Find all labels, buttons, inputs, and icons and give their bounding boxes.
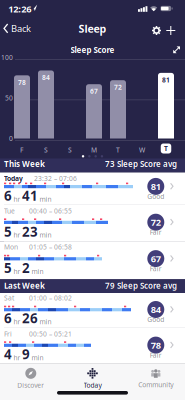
staticText: T xyxy=(116,146,120,154)
button[interactable]: Add xyxy=(166,26,175,35)
staticText: 72 xyxy=(151,216,161,228)
staticText: 84 xyxy=(151,303,161,316)
staticText: 01:00 – 08:02 xyxy=(29,294,72,302)
staticText: T xyxy=(164,144,168,153)
staticText: Sleep Score xyxy=(70,45,114,55)
staticText: hr xyxy=(13,195,20,204)
button[interactable]: Community xyxy=(125,366,185,392)
staticText: 12:26 xyxy=(8,3,31,15)
staticText: F xyxy=(20,146,24,154)
staticText: min xyxy=(31,267,43,276)
staticText: 72 xyxy=(114,83,122,92)
staticText: 00:50 – 05:21 xyxy=(29,329,72,338)
button[interactable]: Sat xyxy=(0,293,185,328)
staticText: Discover xyxy=(17,381,44,390)
button[interactable]: Fri xyxy=(0,328,185,363)
staticText: min xyxy=(39,231,51,239)
button[interactable]: Back xyxy=(3,21,31,35)
button[interactable]: Today xyxy=(62,366,123,392)
staticText: hr xyxy=(13,231,20,239)
staticText: Community xyxy=(138,380,173,389)
staticText: 100 xyxy=(1,53,13,62)
staticText: Fair xyxy=(150,351,162,360)
staticText: Good xyxy=(147,315,164,324)
staticText: Today xyxy=(4,174,23,183)
staticText: 67 xyxy=(151,252,161,265)
staticText: Fair xyxy=(150,264,162,273)
staticText: 79 Sleep Score avg xyxy=(105,280,177,291)
staticText: 4 xyxy=(4,345,12,363)
staticText: Today xyxy=(83,381,101,390)
staticText: 26 xyxy=(22,309,38,327)
staticText: 5 xyxy=(4,223,12,240)
staticText: Mon xyxy=(4,242,18,251)
staticText: 6 xyxy=(4,187,12,204)
button[interactable]: Settings xyxy=(150,24,162,36)
button[interactable]: Expand chart xyxy=(172,46,181,54)
staticText: hr xyxy=(13,267,20,276)
staticText: Fair xyxy=(150,228,162,237)
staticText: Last Week xyxy=(4,280,45,291)
staticText: hr xyxy=(13,317,20,326)
staticText: Good xyxy=(147,192,164,201)
staticText: This Week xyxy=(4,159,45,169)
staticText: W xyxy=(139,146,145,154)
staticText: 50 xyxy=(5,94,13,102)
staticText: Sat xyxy=(4,294,14,302)
staticText: 2 xyxy=(22,259,30,277)
staticText: hr xyxy=(13,353,20,362)
staticText: 23 xyxy=(22,223,38,240)
staticText: 6 xyxy=(4,309,12,327)
staticText: 9 xyxy=(22,345,30,363)
staticText: 01:05 – 06:58 xyxy=(29,242,72,251)
staticText: 41 xyxy=(22,187,38,204)
staticText: min xyxy=(39,317,51,326)
staticText: 84 xyxy=(42,73,50,82)
staticText: Tue xyxy=(4,206,15,215)
staticText: 0 xyxy=(9,134,13,143)
staticText: Back xyxy=(11,22,31,35)
button[interactable]: Discover xyxy=(0,366,61,392)
staticText: 78 xyxy=(18,78,26,87)
staticText: 00:40 – 06:55 xyxy=(29,206,72,215)
button[interactable]: Today xyxy=(0,172,185,205)
staticText: 67 xyxy=(90,87,98,96)
staticText: 81 xyxy=(162,75,170,84)
button[interactable]: Mon xyxy=(0,242,185,279)
button[interactable]: Tue xyxy=(0,205,185,242)
staticText: 23:32 – 07:06 xyxy=(34,174,77,183)
staticText: S xyxy=(68,146,72,154)
staticText: min xyxy=(39,195,51,204)
staticText: Fri xyxy=(4,329,12,338)
staticText: min xyxy=(31,353,43,362)
staticText: S xyxy=(44,146,48,154)
staticText: Sleep xyxy=(78,21,106,36)
staticText: 5 xyxy=(4,259,12,277)
staticText: 81 xyxy=(151,180,161,193)
staticText: M xyxy=(91,146,97,154)
staticText: 78 xyxy=(151,339,161,351)
staticText: 73 Sleep Score avg xyxy=(105,159,177,169)
